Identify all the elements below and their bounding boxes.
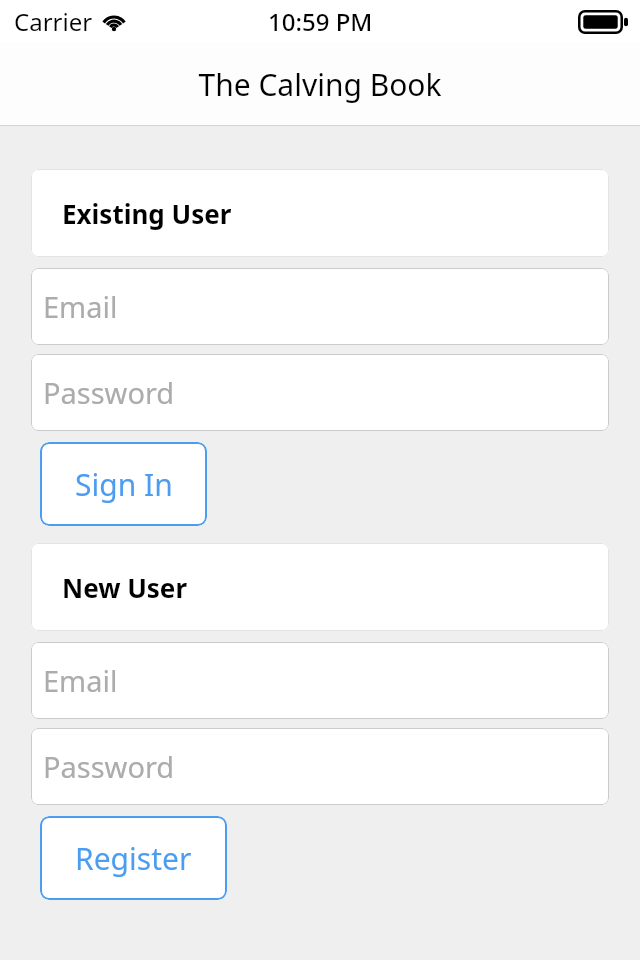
other: Battery full: [578, 10, 628, 34]
button[interactable]: Register: [40, 816, 227, 900]
staticText: Sign In: [75, 464, 173, 505]
button[interactable]: New User: [31, 543, 609, 631]
staticText: New User: [62, 570, 188, 605]
staticText: Password: [43, 373, 175, 412]
staticText: Carrier: [14, 5, 93, 38]
button[interactable]: Email: [31, 268, 609, 345]
button[interactable]: Password: [31, 354, 609, 431]
button[interactable]: Existing User: [31, 169, 609, 257]
button[interactable]: Email: [31, 642, 609, 719]
staticText: Existing User: [62, 196, 232, 231]
staticText: The Calving Book: [198, 64, 442, 105]
other: Wi-Fi signal: [101, 11, 127, 32]
staticText: Email: [43, 287, 118, 326]
staticText: Email: [43, 661, 118, 700]
staticText: Register: [75, 838, 192, 879]
button[interactable]: Sign In: [40, 442, 207, 526]
staticText: 10:59 PM: [268, 5, 373, 38]
button[interactable]: Password: [31, 728, 609, 805]
staticText: Password: [43, 747, 175, 786]
